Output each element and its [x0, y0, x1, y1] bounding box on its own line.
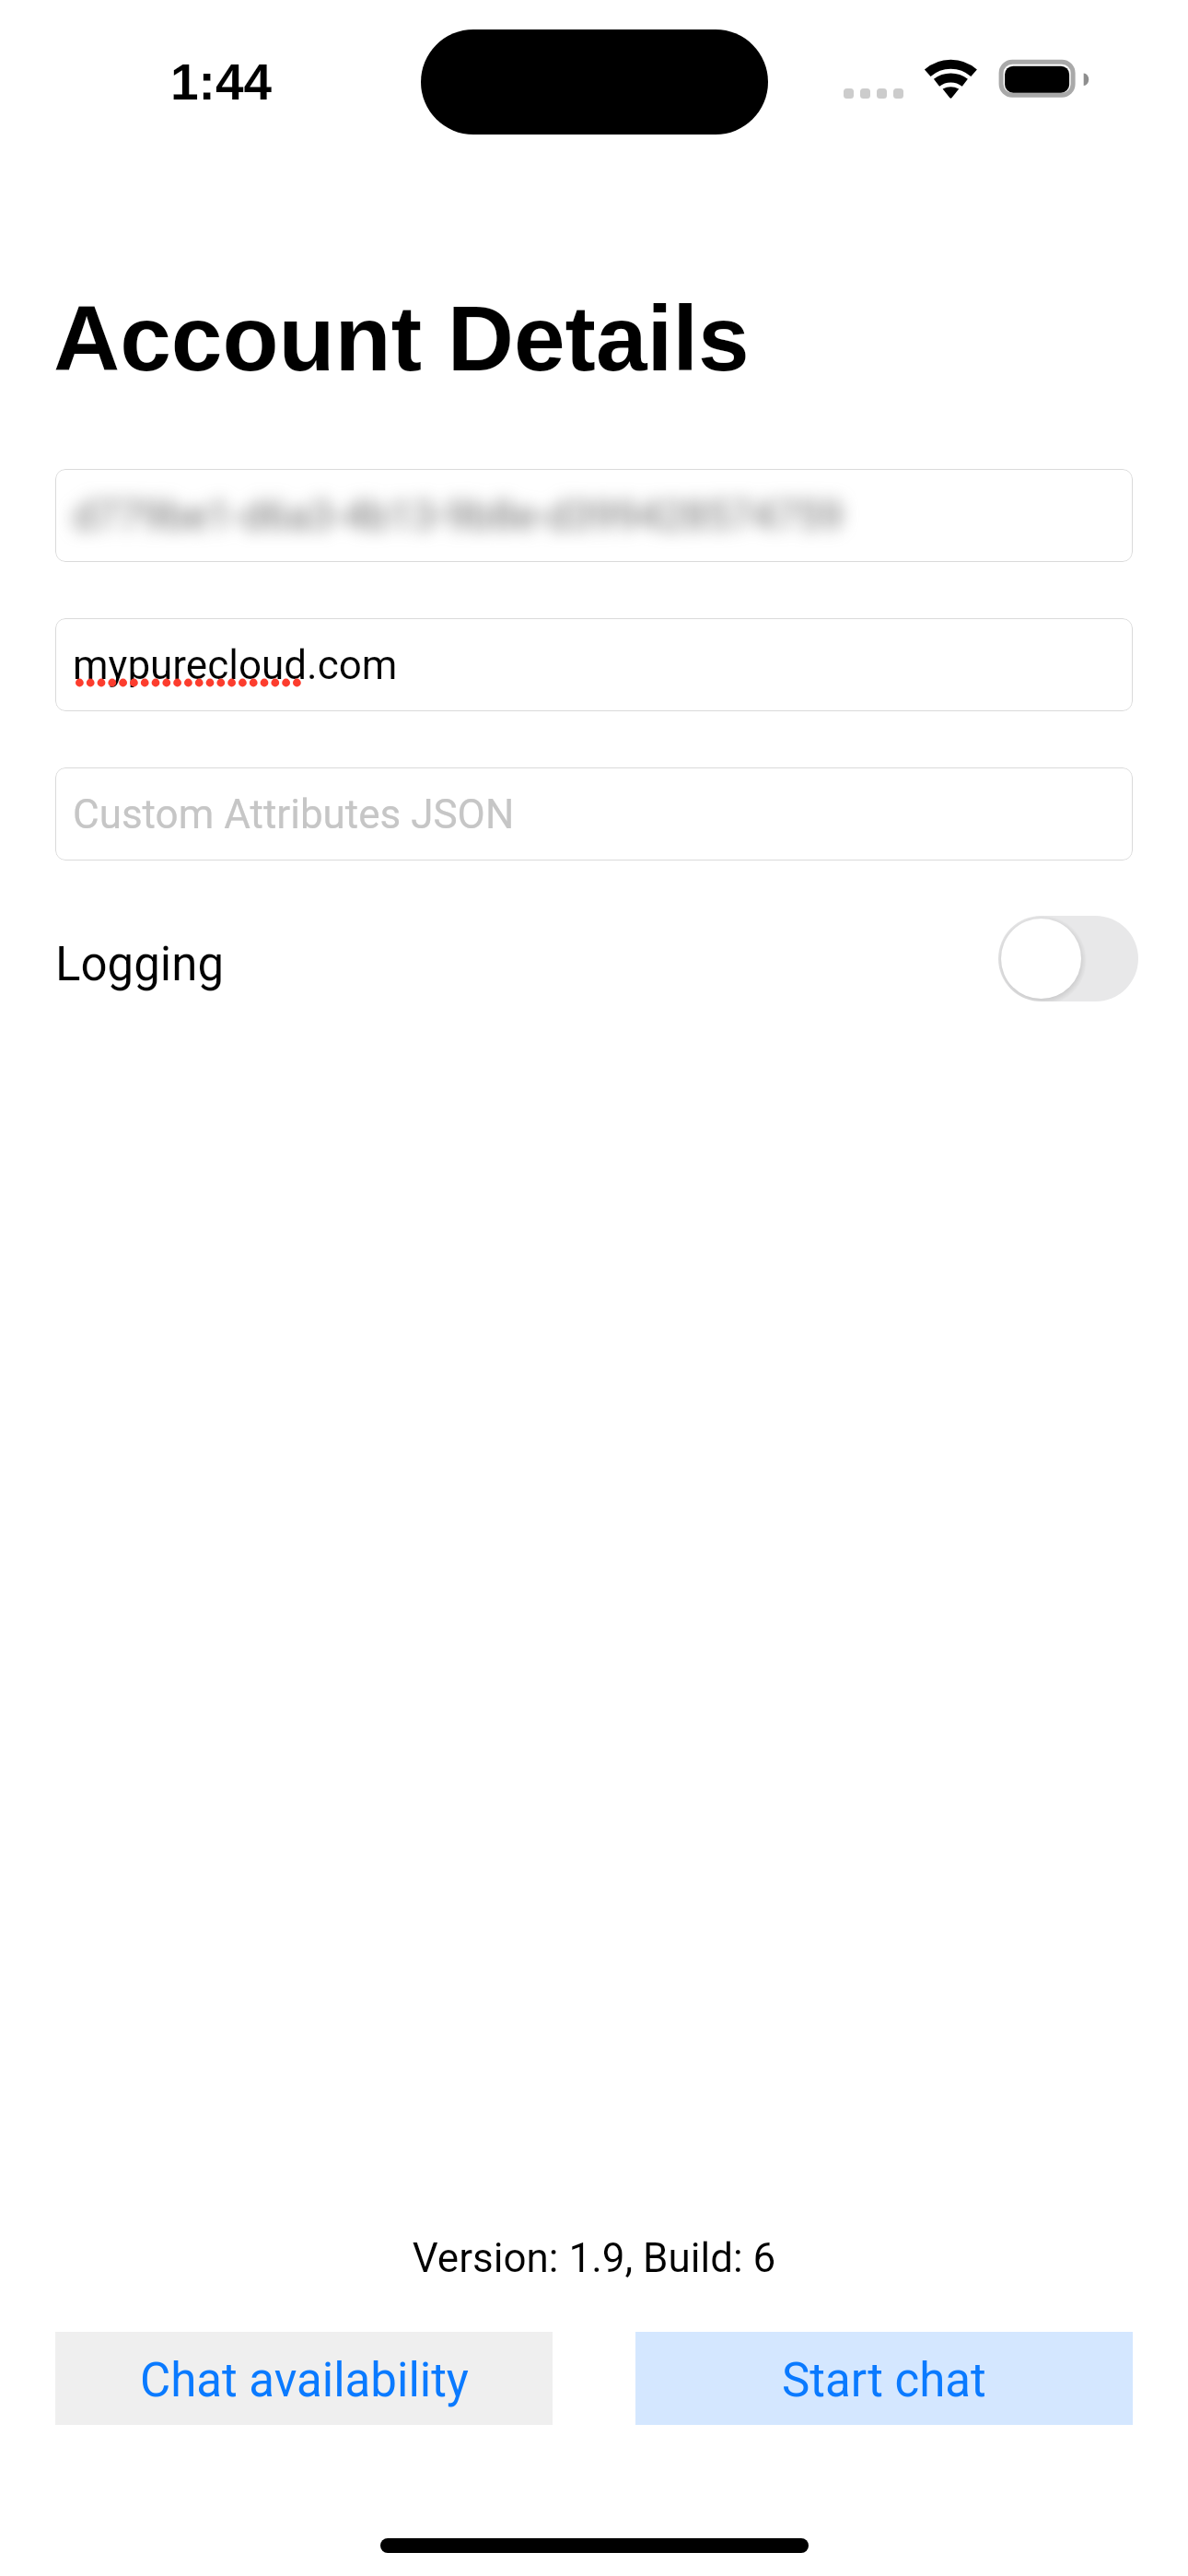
button[interactable]: d779be1-d6a3-4b13-9b8e-d399428574759	[55, 469, 1133, 562]
button[interactable]: Start chat	[635, 2332, 1133, 2425]
button[interactable]: mypurecloud.com	[55, 618, 1133, 711]
staticText: d779be1-d6a3-4b13-9b8e-d399428574759	[73, 492, 844, 540]
staticText: Version: 1.9, Build: 6	[0, 2234, 1188, 2282]
staticText: mypurecloud.com	[73, 641, 398, 689]
staticText: Account Details	[53, 287, 750, 390]
staticText: Chat availability	[140, 2353, 469, 2408]
staticText: Custom Attributes JSON	[73, 790, 515, 838]
button[interactable]: Logging switch, off	[998, 916, 1138, 1001]
button[interactable]: Custom Attributes JSON	[55, 767, 1133, 861]
staticText: 1:44	[170, 53, 273, 110]
staticText: Logging	[55, 937, 225, 992]
staticText: Start chat	[782, 2353, 986, 2408]
button[interactable]: Chat availability	[55, 2332, 553, 2425]
